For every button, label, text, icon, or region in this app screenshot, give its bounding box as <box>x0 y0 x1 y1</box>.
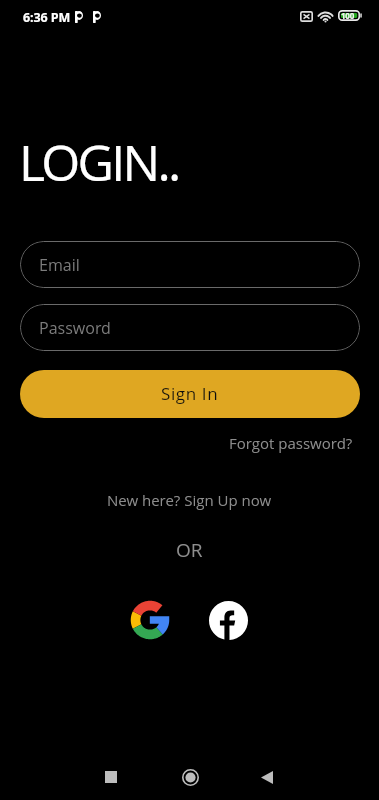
button[interactable]: Sign in with Google <box>129 598 173 642</box>
staticText: 6:36 PM <box>23 9 71 26</box>
staticText: Email <box>39 254 80 276</box>
staticText: OR <box>176 537 203 563</box>
button[interactable]: Sign in with Facebook <box>206 598 250 642</box>
button[interactable]: Recents <box>87 753 135 800</box>
button[interactable]: Sign In <box>20 370 360 418</box>
button[interactable]: Password <box>20 304 360 351</box>
button[interactable]: Home <box>166 753 214 800</box>
button[interactable]: Email <box>20 241 360 288</box>
button[interactable]: Forgot password? <box>223 430 359 456</box>
staticText: LOGIN.. <box>19 128 179 196</box>
button[interactable]: New here? Sign Up now <box>99 487 280 513</box>
staticText: Password <box>39 317 111 339</box>
staticText: 100 <box>341 10 355 21</box>
staticText: New here? Sign Up now <box>107 490 272 510</box>
staticText: Forgot password? <box>229 433 353 453</box>
staticText: Sign In <box>161 382 219 405</box>
button[interactable]: Back <box>243 753 291 800</box>
